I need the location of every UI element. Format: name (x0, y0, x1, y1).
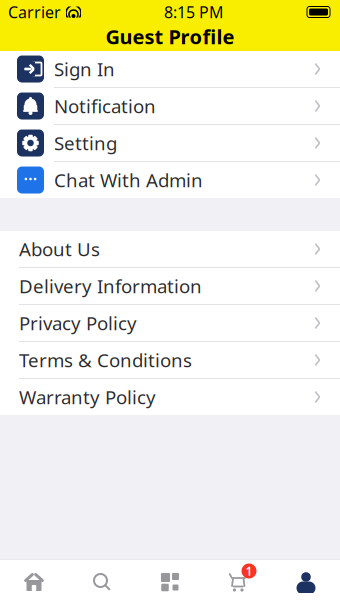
staticText: Notification (54, 94, 156, 118)
staticText: Privacy Policy (19, 311, 137, 335)
button[interactable]: About Us (0, 231, 340, 267)
button[interactable]: Terms & Conditions (0, 342, 340, 378)
staticText: Guest Profile (105, 23, 234, 50)
button[interactable]: Categories (136, 560, 204, 604)
staticText: Carrier (8, 1, 61, 23)
button[interactable]: Search (68, 560, 136, 604)
button[interactable]: Warranty Policy (0, 379, 340, 415)
button[interactable]: Chat With Admin (0, 162, 340, 198)
button[interactable]: Delivery Information (0, 268, 340, 304)
staticText: Chat With Admin (54, 168, 203, 192)
staticText: Setting (54, 131, 117, 155)
button[interactable]: Cart (204, 560, 272, 604)
button[interactable]: Home (0, 560, 68, 604)
staticText: About Us (19, 237, 100, 261)
staticText: Warranty Policy (19, 385, 156, 409)
staticText: 8:15 PM (164, 1, 224, 23)
button[interactable]: Notification (0, 88, 340, 124)
staticText: 1 (245, 563, 252, 579)
staticText: Delivery Information (19, 274, 202, 298)
button[interactable]: Setting (0, 125, 340, 161)
staticText: Sign In (54, 57, 115, 81)
button[interactable]: Sign In (0, 51, 340, 87)
staticText: Terms & Conditions (19, 348, 192, 372)
button[interactable]: Profile (272, 560, 340, 604)
button[interactable]: Privacy Policy (0, 305, 340, 341)
